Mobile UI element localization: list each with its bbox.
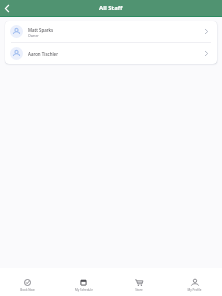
staticText: Aaron Tischler: [28, 51, 58, 57]
button[interactable]: My Profile: [167, 268, 222, 296]
staticText: Owner: [28, 33, 39, 38]
button[interactable]: Store: [111, 268, 166, 296]
button[interactable]: Back: [0, 0, 13, 16]
staticText: All Staff: [99, 4, 123, 12]
staticText: My Schedule: [75, 288, 93, 292]
button[interactable]: My Schedule: [56, 268, 111, 296]
button[interactable]: Book Now: [0, 268, 55, 296]
staticText: Book Now: [20, 288, 35, 292]
staticText: Matt Sparks: [28, 27, 54, 33]
button[interactable]: Aaron Tischler: [5, 43, 217, 64]
staticText: Store: [135, 288, 143, 292]
button[interactable]: Matt Sparks: [5, 21, 217, 42]
staticText: My Profile: [187, 288, 202, 292]
